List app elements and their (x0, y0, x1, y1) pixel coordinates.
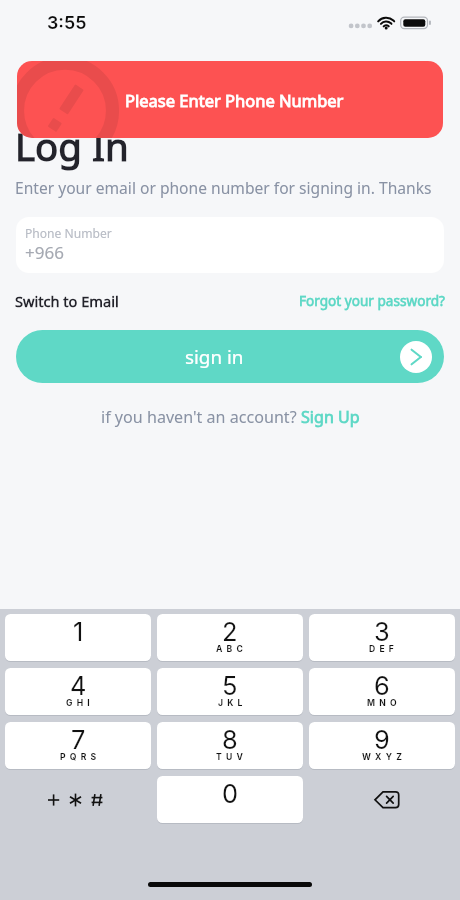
staticText: 1 (73, 616, 84, 647)
button[interactable]: Phone Number (16, 217, 444, 273)
staticText: 2 (222, 616, 238, 647)
staticText: DEF (369, 644, 399, 654)
button[interactable]: Symbols (5, 776, 151, 823)
staticText: GHI (66, 698, 94, 708)
button[interactable]: Please Enter Phone Number (17, 61, 443, 138)
button[interactable]: Forgot your password? (299, 291, 446, 310)
button[interactable]: Switch to Email (15, 291, 119, 311)
staticText: if you haven't an account? (101, 406, 301, 428)
staticText: +966 (25, 241, 64, 264)
button[interactable]: 2 (157, 614, 303, 661)
staticText: Please Enter Phone Number (125, 89, 344, 111)
staticText: ABC (216, 644, 248, 654)
staticText: JKL (218, 698, 247, 708)
staticText: TUV (216, 752, 248, 762)
staticText: 9 (374, 724, 390, 755)
staticText: Forgot your password? (299, 291, 446, 310)
staticText: 3 (374, 616, 390, 647)
button[interactable]: 7 (5, 722, 151, 769)
staticText: 5 (222, 670, 238, 701)
button[interactable]: sign in (16, 330, 444, 383)
staticText: 8 (222, 724, 238, 755)
staticText: 4 (70, 670, 87, 701)
staticText: PQRS (60, 752, 101, 762)
button[interactable]: 5 (157, 668, 303, 715)
button[interactable]: 3 (309, 614, 455, 661)
staticText: Sign Up (301, 406, 360, 428)
staticText: MNO (367, 698, 401, 708)
button[interactable]: 4 (5, 668, 151, 715)
staticText: 3:55 (47, 12, 87, 34)
staticText: sign in (185, 344, 244, 370)
button[interactable]: Delete (309, 776, 455, 823)
button[interactable]: 0 (157, 776, 303, 823)
staticText: 6 (374, 670, 390, 701)
staticText: WXYZ (362, 752, 407, 762)
button[interactable]: 9 (309, 722, 455, 769)
staticText: Switch to Email (15, 291, 119, 311)
button[interactable]: 1 (5, 614, 151, 661)
button[interactable]: Sign Up (301, 406, 360, 428)
button[interactable]: 8 (157, 722, 303, 769)
staticText: 0 (222, 778, 239, 809)
button[interactable]: 6 (309, 668, 455, 715)
staticText: Log In (15, 120, 129, 172)
staticText: Phone Number (25, 225, 112, 241)
staticText: 7 (71, 724, 86, 755)
staticText: Enter your email or phone number for sig… (15, 177, 432, 198)
